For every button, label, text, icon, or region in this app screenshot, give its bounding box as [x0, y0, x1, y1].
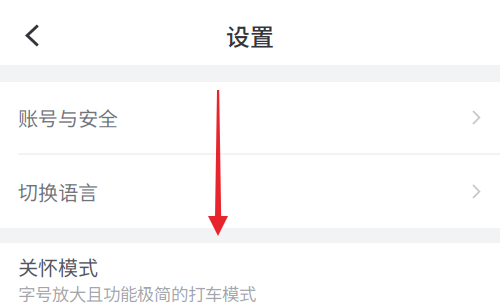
staticText: 切换语言	[18, 177, 98, 206]
button[interactable]: 账号与安全	[0, 82, 500, 153]
staticText: 设置	[226, 18, 274, 53]
staticText: 字号放大且功能极简的打车模式	[18, 281, 256, 305]
button[interactable]: 返回	[0, 6, 65, 64]
button[interactable]: 切换语言	[0, 155, 500, 228]
staticText: 账号与安全	[18, 103, 118, 132]
staticText: 关怀模式	[18, 252, 98, 281]
button[interactable]: 关怀模式	[0, 243, 500, 305]
